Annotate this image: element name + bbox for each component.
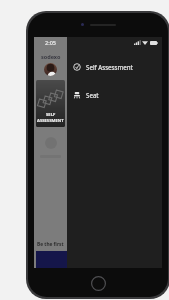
button[interactable]: Seat [67, 88, 162, 102]
staticText: Seat [86, 91, 99, 99]
other: Self Assessment [73, 63, 81, 71]
staticText: SELF [46, 112, 56, 118]
staticText: sodexo [41, 53, 61, 60]
other: Seat [73, 91, 81, 99]
staticText: Self Assessment [86, 63, 133, 71]
staticText: 2:05 [45, 39, 56, 46]
staticText: Be the first [37, 241, 64, 248]
staticText: ASSESSMENT [37, 118, 64, 124]
button[interactable]: Self Assessment [67, 60, 162, 74]
